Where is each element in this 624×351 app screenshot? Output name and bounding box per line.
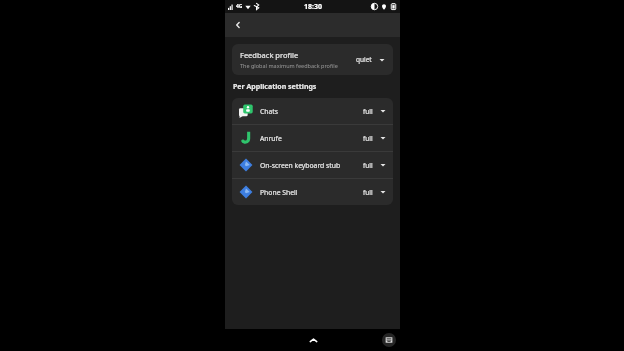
staticText: Feedback profile [240, 50, 299, 60]
staticText: Per Application settings [233, 82, 317, 92]
button[interactable]: Anrufe [232, 125, 393, 151]
button[interactable]: Chats [232, 98, 393, 124]
staticText: Chats [260, 107, 363, 116]
staticText: 18:30 [304, 2, 322, 12]
staticText: On-screen keyboard stub [260, 161, 363, 170]
button[interactable]: Expand [303, 330, 323, 350]
staticText: Phone Shell [260, 188, 363, 197]
staticText: full [363, 134, 373, 143]
staticText: full [363, 107, 373, 116]
staticText: The global maximum feedback profile [240, 62, 338, 69]
button[interactable]: Phone Shell [232, 179, 393, 205]
button[interactable]: Back [228, 15, 248, 35]
staticText: quiet [356, 55, 372, 64]
staticText: full [363, 188, 373, 197]
button[interactable]: On-screen keyboard stub [232, 152, 393, 178]
button[interactable]: Feedback profile [232, 44, 393, 75]
staticText: Anrufe [260, 134, 363, 143]
staticText: 4G [236, 3, 243, 10]
staticText: full [363, 161, 373, 170]
button[interactable]: Keyboard [382, 333, 396, 347]
